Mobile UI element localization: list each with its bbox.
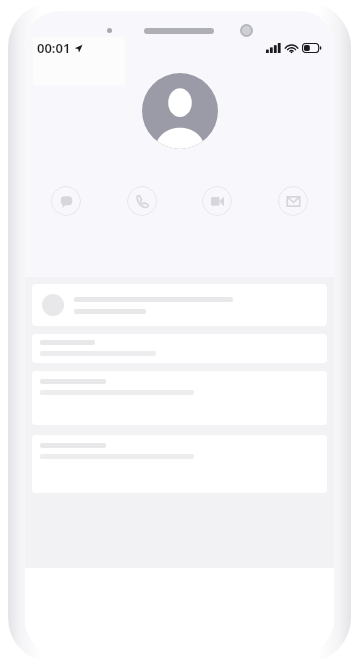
button[interactable]: Video call (202, 186, 232, 216)
button[interactable]: Call (127, 186, 157, 216)
button[interactable]: Message (51, 186, 81, 216)
button[interactable]: Profile photo (142, 73, 218, 149)
staticText: 00:01 (37, 39, 71, 57)
button[interactable] (32, 371, 327, 425)
button[interactable] (32, 334, 327, 363)
button[interactable] (32, 284, 327, 326)
button[interactable]: Email (278, 186, 308, 216)
button[interactable] (32, 435, 327, 493)
